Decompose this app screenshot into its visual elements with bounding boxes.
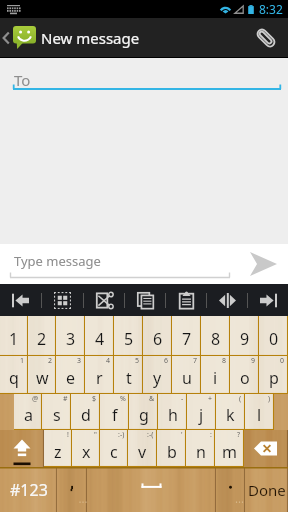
button[interactable]: m	[215, 430, 244, 467]
button[interactable]: 1	[0, 316, 28, 356]
staticText: j	[199, 404, 204, 426]
staticText: k	[226, 404, 235, 426]
button[interactable]: t	[114, 356, 143, 394]
button[interactable]: 7	[172, 316, 201, 356]
staticText: %	[120, 394, 126, 404]
button[interactable]: Select all	[42, 284, 83, 316]
staticText: 4	[106, 356, 111, 366]
staticText: !	[67, 430, 69, 440]
button[interactable]: k	[216, 394, 245, 430]
staticText: i	[213, 367, 218, 389]
staticText: 1	[20, 356, 25, 366]
button[interactable]: End	[248, 284, 288, 316]
button[interactable]: j	[187, 394, 216, 430]
button[interactable]: Space	[87, 467, 216, 512]
button[interactable]: c	[100, 430, 128, 467]
staticText: $	[92, 394, 97, 404]
staticText: t	[126, 367, 132, 389]
staticText: s	[53, 404, 61, 426]
staticText: 9	[240, 328, 250, 350]
staticText: Done	[248, 480, 286, 500]
button[interactable]: Paste	[166, 284, 206, 316]
button[interactable]: x	[72, 430, 100, 467]
staticText: 0	[280, 356, 285, 366]
button[interactable]: u	[172, 356, 201, 394]
button[interactable]: r	[85, 356, 114, 394]
button[interactable]: a	[14, 394, 42, 430]
staticText: :-(	[147, 430, 154, 440]
button[interactable]: 8	[201, 316, 230, 356]
staticText: u	[182, 367, 192, 389]
button[interactable]: z	[44, 430, 72, 467]
staticText: 9	[251, 356, 256, 366]
button[interactable]: p	[259, 356, 288, 394]
staticText: 7	[193, 356, 198, 366]
staticText: New message	[41, 28, 140, 48]
button[interactable]: #123	[0, 467, 57, 512]
staticText: e	[66, 367, 76, 389]
button[interactable]: g	[129, 394, 158, 430]
button[interactable]: 5	[114, 316, 143, 356]
button[interactable]: 2	[28, 316, 56, 356]
button[interactable]: Type message	[0, 244, 230, 284]
staticText: q	[9, 367, 19, 389]
button[interactable]: s	[42, 394, 71, 430]
button[interactable]: Send	[230, 244, 288, 284]
button[interactable]: o	[230, 356, 259, 394]
button[interactable]: w	[28, 356, 56, 394]
button[interactable]: n	[186, 430, 215, 467]
staticText: n	[196, 441, 206, 463]
button[interactable]: Attach	[244, 18, 288, 57]
staticText: 2	[37, 328, 47, 350]
button[interactable]: 6	[143, 316, 172, 356]
staticText: l	[257, 404, 262, 426]
staticText: v	[138, 441, 147, 463]
staticText: w	[36, 367, 49, 389]
staticText: 5	[124, 328, 134, 350]
staticText: 3	[77, 356, 82, 366]
button[interactable]: New message	[0, 18, 146, 57]
staticText: 4	[95, 328, 105, 350]
staticText: a	[24, 404, 33, 426]
button[interactable]: Tab	[0, 284, 41, 316]
button[interactable]: 9	[230, 316, 259, 356]
button[interactable]: Done	[245, 467, 288, 512]
staticText: :	[210, 430, 212, 440]
button[interactable]: 3	[56, 316, 85, 356]
staticText: To	[14, 70, 31, 90]
button[interactable]: To	[0, 58, 288, 91]
staticText: #	[63, 394, 68, 404]
button[interactable]: v	[128, 430, 157, 467]
staticText: ?	[237, 430, 241, 440]
button[interactable]: d	[71, 394, 100, 430]
staticText: m	[222, 441, 237, 463]
staticText: 3	[66, 328, 76, 350]
button[interactable]: Comma	[57, 467, 87, 512]
button[interactable]: l	[245, 394, 274, 430]
button[interactable]: Copy	[125, 284, 165, 316]
button[interactable]: Shift	[0, 430, 44, 467]
staticText: (	[239, 394, 242, 404]
button[interactable]: Period	[216, 467, 245, 512]
staticText: 6	[164, 356, 169, 366]
staticText: y	[153, 367, 162, 389]
button[interactable]: e	[56, 356, 85, 394]
button[interactable]: Backspace	[244, 430, 288, 467]
staticText: r	[96, 367, 103, 389]
button[interactable]: q	[0, 356, 28, 394]
button[interactable]: Move cursor	[207, 284, 247, 316]
staticText: 1	[9, 328, 19, 350]
staticText: f	[112, 404, 118, 426]
button[interactable]: y	[143, 356, 172, 394]
button[interactable]: b	[157, 430, 186, 467]
staticText: Type message	[14, 252, 101, 270]
button[interactable]: h	[158, 394, 187, 430]
button[interactable]: i	[201, 356, 230, 394]
staticText: &	[149, 394, 155, 404]
button[interactable]: Cut	[84, 284, 124, 316]
staticText: +	[208, 394, 213, 404]
button[interactable]: f	[100, 394, 129, 430]
staticText: :-)	[118, 430, 125, 440]
button[interactable]: 0	[259, 316, 288, 356]
button[interactable]: 4	[85, 316, 114, 356]
